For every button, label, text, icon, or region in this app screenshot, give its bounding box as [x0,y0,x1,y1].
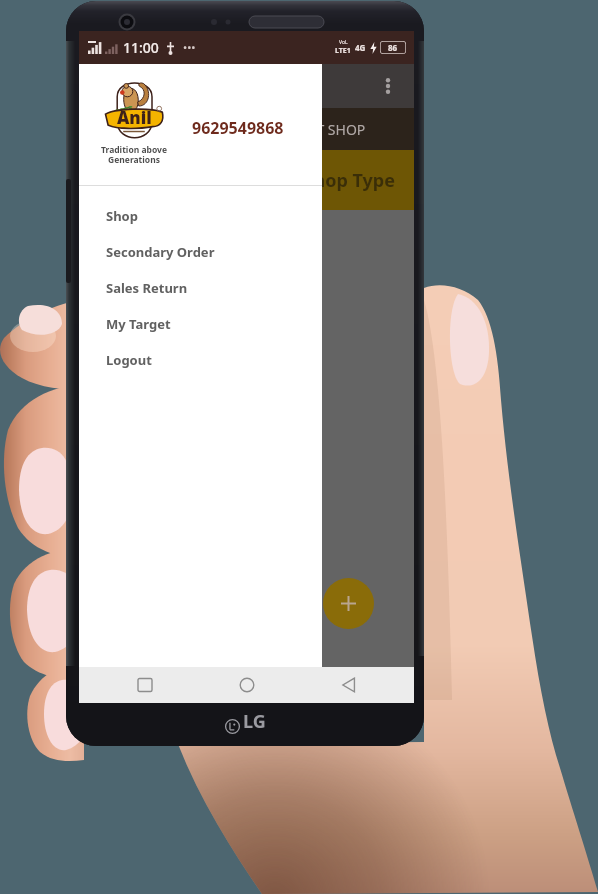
staticText: 86 [388,42,398,53]
staticText: Secondary Order [106,243,215,261]
staticText: My Target [106,315,171,333]
staticText: Sales Return [106,279,188,297]
staticText: Select Shop Type [245,168,395,193]
button[interactable]: Logout [79,342,322,378]
staticText: Shop [106,207,138,225]
staticText: 4G [355,42,366,53]
button[interactable]: More options [370,68,406,104]
button[interactable]: Home [196,667,298,703]
staticText: LG [243,709,266,734]
button[interactable]: Secondary Order [79,234,322,270]
staticText: VoL [339,39,348,46]
staticText: LTE1 [335,46,351,56]
button[interactable]: Select Shop Type [79,150,414,210]
staticText: 9629549868 [192,117,284,139]
staticText: SELECT SHOP [277,120,366,139]
button[interactable]: Recents [94,667,196,703]
button[interactable]: Back [298,667,400,703]
staticText: Anil [117,106,152,129]
staticText: Tradition above Generations [101,144,167,166]
button[interactable]: Shop [79,198,322,234]
button[interactable]: SELECT SHOP [79,108,414,150]
button[interactable]: My Target [79,306,322,342]
button[interactable]: Add [323,578,374,629]
staticText: ••• [183,40,196,55]
staticText: 11:00 [123,38,159,57]
button[interactable]: Sales Return [79,270,322,306]
staticText: Logout [106,351,152,369]
